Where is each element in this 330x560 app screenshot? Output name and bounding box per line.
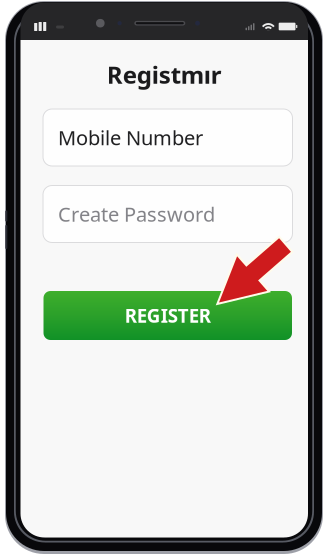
staticText: Registmır: [107, 59, 222, 90]
staticText: Create Password: [58, 201, 215, 227]
button[interactable]: REGISTER: [43, 291, 292, 340]
staticText: Mobile Number: [58, 124, 203, 151]
staticText: REGISTER: [125, 303, 211, 328]
button[interactable]: Mobile Number: [43, 109, 292, 166]
button[interactable]: Create Password: [43, 185, 292, 242]
